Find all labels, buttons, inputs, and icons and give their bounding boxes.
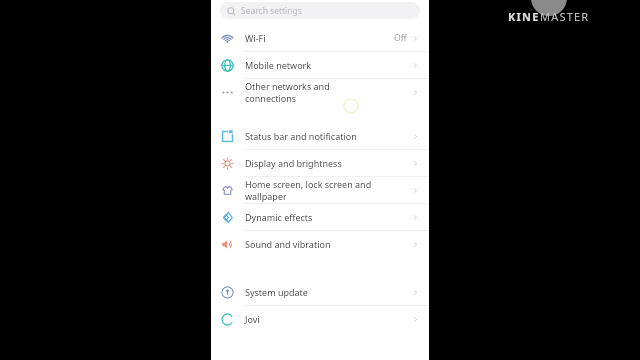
button[interactable]: System update [211,279,429,305]
staticText: System update [245,286,308,298]
staticText: Off [394,32,407,44]
button[interactable]: Status bar and notification [211,123,429,149]
staticText: wallpaper [245,190,287,202]
button[interactable]: Jovi [211,306,429,332]
button[interactable]: Mobile network [211,52,429,78]
staticText: Home screen, lock screen and [245,178,372,190]
staticText: Search settings [241,5,302,17]
button[interactable]: Home screen, lock screen and [211,177,429,203]
staticText: Status bar and notification [245,130,357,142]
staticText: Wi-Fi [245,32,266,44]
button[interactable]: Wi-Fi [211,25,429,51]
staticText: Jovi [245,313,260,325]
staticText: Dynamic effects [245,211,313,223]
button[interactable]: Other networks and [211,79,429,105]
staticText: MASTER [540,9,590,24]
staticText: connections [245,92,297,104]
button[interactable]: Search settings [220,2,420,19]
button[interactable]: Sound and vibration [211,231,429,257]
button[interactable]: Dynamic effects [211,204,429,230]
staticText: Mobile network [245,59,312,71]
staticText: KINE [508,9,540,24]
button[interactable]: Display and brightness [211,150,429,176]
staticText: Sound and vibration [245,238,331,250]
staticText: Other networks and [245,80,330,92]
staticText: Display and brightness [245,157,342,169]
